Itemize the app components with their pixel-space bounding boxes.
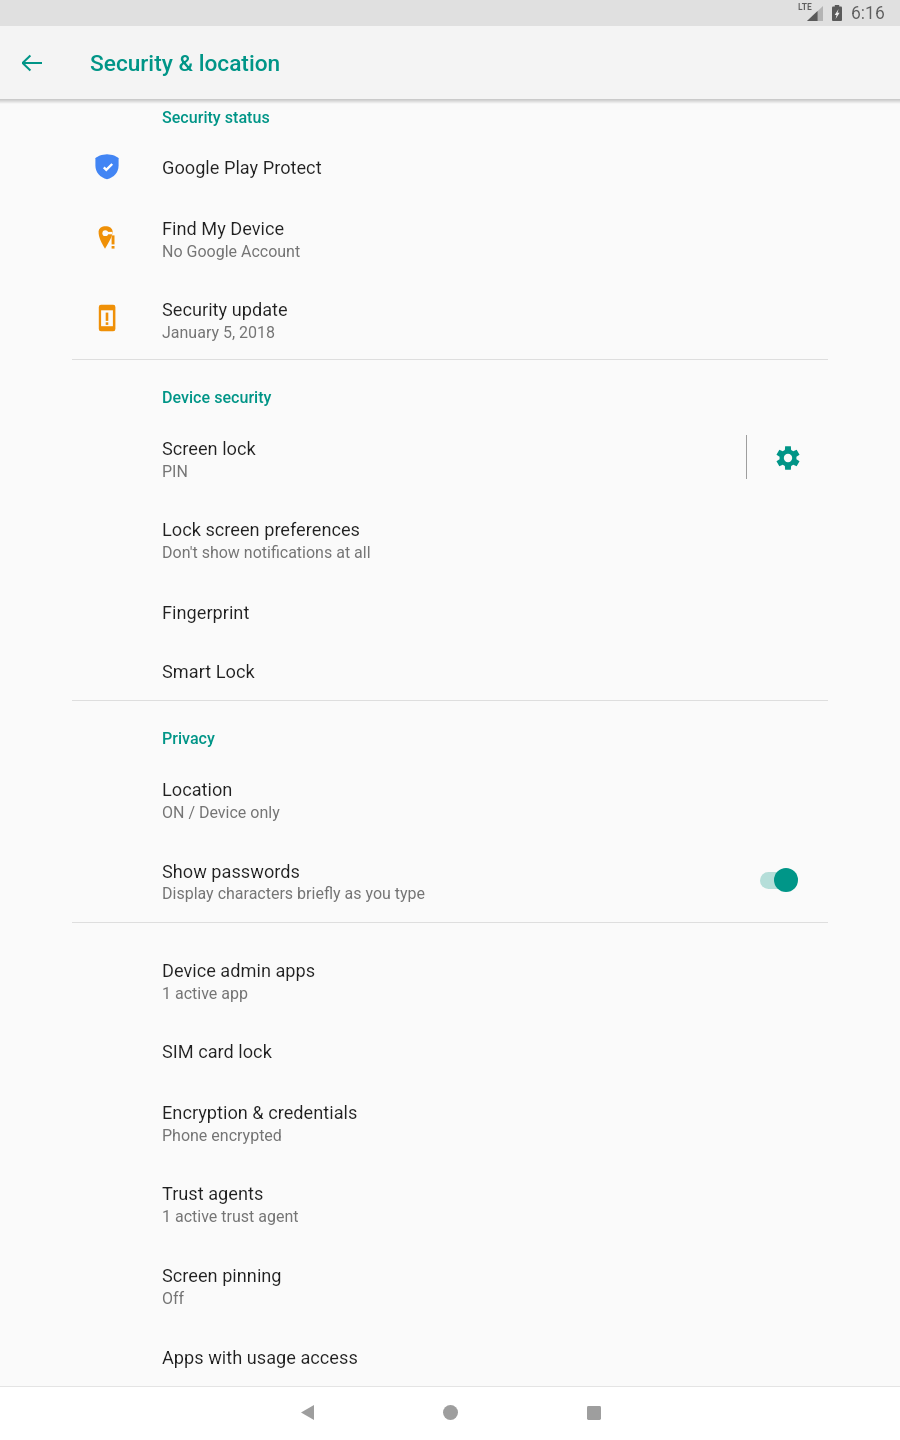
staticText: Device admin apps xyxy=(162,960,316,981)
button[interactable]: Navigate up xyxy=(10,41,54,85)
staticText: Encryption & credentials xyxy=(162,1102,358,1123)
staticText: Apps with usage access xyxy=(162,1347,358,1368)
staticText: Trust agents xyxy=(162,1183,264,1204)
button[interactable] xyxy=(0,140,900,195)
staticText: Device security xyxy=(162,388,272,407)
staticText: Lock screen preferences xyxy=(162,519,361,540)
staticText: ON / Device only xyxy=(162,803,280,822)
staticText: Off xyxy=(162,1289,185,1308)
button[interactable] xyxy=(0,645,900,699)
staticText: No Google Account xyxy=(162,242,301,261)
button[interactable]: Show passwords xyxy=(736,845,832,915)
staticText: SIM card lock xyxy=(162,1041,272,1062)
button[interactable]: Home xyxy=(414,1386,486,1439)
button[interactable] xyxy=(0,842,900,904)
staticText: Smart Lock xyxy=(162,661,255,682)
staticText: PIN xyxy=(162,462,188,481)
button[interactable] xyxy=(0,942,900,1002)
button[interactable] xyxy=(0,1247,900,1307)
button[interactable] xyxy=(0,420,900,478)
staticText: Don't show notifications at all xyxy=(162,543,371,562)
staticText: Display characters briefly as you type xyxy=(162,884,426,903)
staticText: LTE xyxy=(798,2,812,12)
staticText: Phone encrypted xyxy=(162,1126,282,1145)
staticText: 6:16 xyxy=(851,3,885,24)
button[interactable] xyxy=(0,280,900,342)
button[interactable] xyxy=(0,198,900,258)
staticText: Privacy xyxy=(162,729,215,748)
staticText: Find My Device xyxy=(162,218,285,239)
staticText: 1 active app xyxy=(162,984,248,1003)
button[interactable] xyxy=(0,1025,900,1077)
button[interactable] xyxy=(0,585,900,637)
button[interactable] xyxy=(0,762,900,820)
staticText: Security status xyxy=(162,108,270,127)
staticText: Google Play Protect xyxy=(162,157,322,178)
button[interactable]: Recent apps xyxy=(558,1386,630,1439)
staticText: Security & location xyxy=(90,50,281,77)
button[interactable]: Screen lock settings xyxy=(752,420,824,496)
staticText: Location xyxy=(162,779,233,800)
staticText: Security update xyxy=(162,299,288,320)
button[interactable] xyxy=(0,1084,900,1144)
staticText: Screen pinning xyxy=(162,1265,282,1286)
button[interactable] xyxy=(0,500,900,562)
button[interactable] xyxy=(0,1165,900,1225)
staticText: 1 active trust agent xyxy=(162,1207,299,1226)
staticText: Screen lock xyxy=(162,438,256,459)
button[interactable] xyxy=(0,1330,900,1382)
staticText: Fingerprint xyxy=(162,602,250,623)
button[interactable]: Back xyxy=(271,1386,343,1439)
staticText: January 5, 2018 xyxy=(162,323,276,342)
staticText: Show passwords xyxy=(162,861,300,882)
